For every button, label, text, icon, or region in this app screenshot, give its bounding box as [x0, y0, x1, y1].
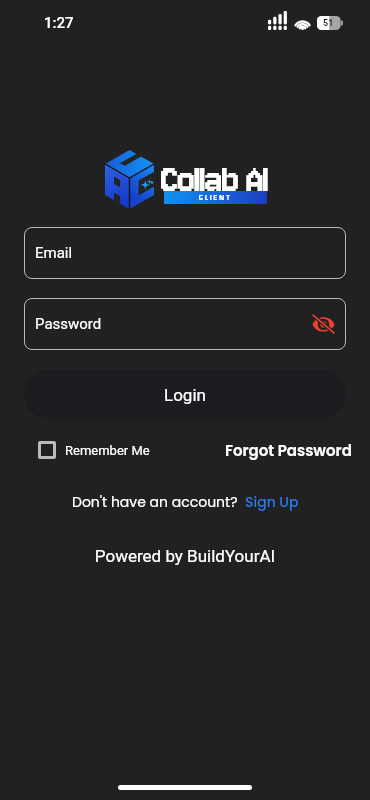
staticText: Collab AI	[161, 157, 269, 202]
button[interactable]: Login	[24, 370, 346, 419]
staticText: Password	[35, 315, 102, 333]
button[interactable]: Toggle password visibility	[311, 312, 335, 336]
staticText: 1:27	[44, 14, 74, 32]
button[interactable]: Sign Up	[245, 492, 299, 512]
staticText: 51	[323, 18, 334, 29]
staticText: Login	[164, 385, 206, 405]
button[interactable]: Forgot Password	[225, 434, 352, 466]
staticText: Don't have an account?	[72, 492, 238, 512]
button[interactable]: Remember Me	[38, 434, 150, 466]
staticText: Forgot Password	[225, 440, 352, 461]
staticText: Email	[35, 244, 73, 262]
staticText: Powered by BuildYourAI	[0, 546, 370, 566]
button[interactable]: Password	[24, 298, 346, 350]
button[interactable]: Email	[24, 227, 346, 279]
staticText: CLIENT	[199, 192, 232, 203]
staticText: Remember Me	[65, 443, 150, 458]
